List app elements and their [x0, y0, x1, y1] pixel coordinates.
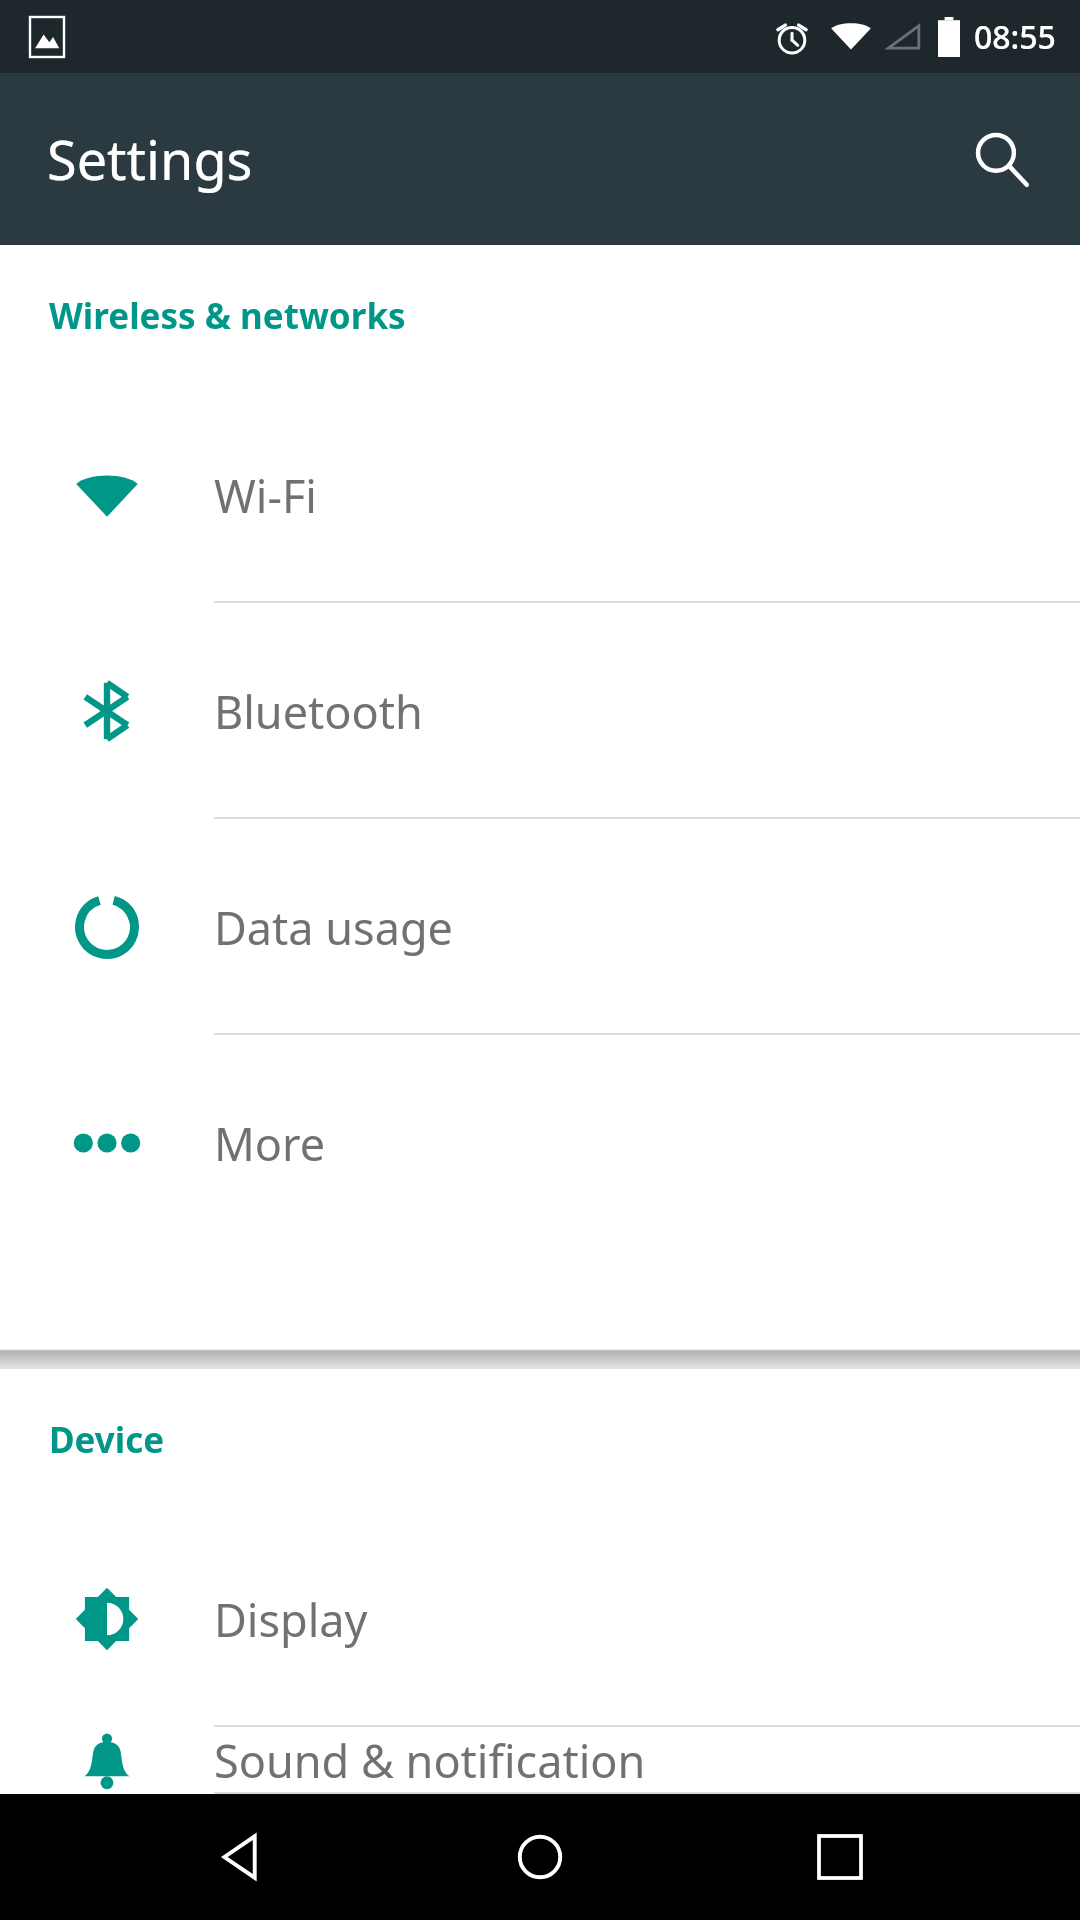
- staticText: Device: [49, 1416, 165, 1464]
- staticText: More: [214, 1113, 326, 1174]
- button[interactable]: Data usage: [0, 819, 1080, 1035]
- staticText: 08:55: [974, 15, 1056, 59]
- staticText: Data usage: [214, 897, 453, 958]
- staticText: Settings: [47, 122, 253, 196]
- button[interactable]: Back: [180, 1797, 300, 1917]
- button[interactable]: Recents: [780, 1797, 900, 1917]
- button[interactable]: Search: [946, 104, 1056, 214]
- button[interactable]: Home: [480, 1797, 600, 1917]
- staticText: Bluetooth: [214, 681, 423, 742]
- button[interactable]: Bluetooth: [0, 603, 1080, 819]
- staticText: Display: [214, 1589, 368, 1650]
- staticText: Wireless & networks: [49, 292, 406, 340]
- staticText: Sound & notification: [214, 1730, 646, 1791]
- button[interactable]: Sound & notification: [0, 1727, 1080, 1794]
- button[interactable]: More: [0, 1035, 1080, 1251]
- button[interactable]: Wi-Fi: [0, 387, 1080, 603]
- staticText: Wi-Fi: [214, 465, 317, 526]
- button[interactable]: Display: [0, 1511, 1080, 1727]
